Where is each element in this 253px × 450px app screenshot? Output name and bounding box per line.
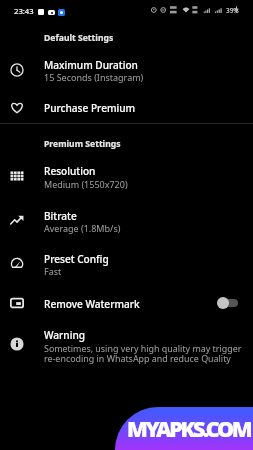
staticText: Preset Config — [44, 252, 109, 266]
staticText: 39% — [226, 6, 239, 15]
button[interactable] — [0, 243, 253, 285]
button[interactable] — [0, 199, 253, 241]
staticText: Bitrate — [44, 209, 77, 223]
staticText: Resolution — [44, 164, 96, 178]
staticText: Premium Settings — [44, 138, 121, 150]
staticText: 15 Seconds (Instagram) — [44, 71, 144, 83]
button[interactable]: Remove Watermark — [212, 293, 244, 313]
button[interactable] — [0, 87, 253, 129]
staticText: Fast — [44, 265, 62, 277]
staticText: MYAPKS.COM — [127, 414, 251, 443]
staticText: Default Settings — [44, 32, 114, 44]
button[interactable] — [0, 282, 253, 324]
staticText: Sometimes, using very high quality may t… — [44, 342, 242, 365]
staticText: Warning — [44, 328, 85, 342]
staticText: Average (1.8Mb/s) — [44, 222, 121, 234]
staticText: Purchase Premium — [44, 101, 136, 115]
staticText: Maximum Duration — [44, 58, 138, 72]
staticText: Remove Watermark — [44, 297, 140, 311]
button[interactable] — [0, 49, 253, 91]
button[interactable] — [0, 155, 253, 197]
staticText: Medium (1550x720) — [44, 178, 128, 190]
staticText: 23:43 — [14, 6, 34, 16]
